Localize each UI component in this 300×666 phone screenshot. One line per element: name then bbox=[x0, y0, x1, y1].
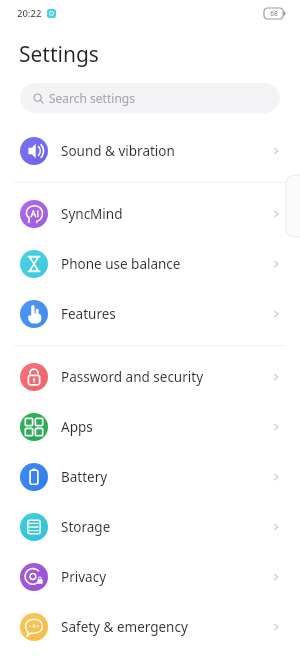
button[interactable]: Apps bbox=[0, 402, 300, 452]
button[interactable]: Features bbox=[0, 289, 300, 339]
button[interactable]: Safety & emergency bbox=[0, 602, 300, 652]
button[interactable]: Sound & vibration bbox=[0, 126, 300, 176]
staticText: Settings bbox=[19, 40, 99, 69]
button[interactable]: Storage bbox=[0, 502, 300, 552]
staticText: Password and security bbox=[61, 368, 270, 386]
staticText: SyncMind bbox=[61, 205, 270, 223]
staticText: Storage bbox=[61, 518, 270, 536]
button[interactable]: SyncMind bbox=[0, 189, 300, 239]
staticText: 68 bbox=[270, 9, 278, 18]
button[interactable]: Battery bbox=[0, 452, 300, 502]
staticText: Sound & vibration bbox=[61, 142, 270, 160]
staticText: Features bbox=[61, 305, 270, 323]
button[interactable]: Search settings bbox=[20, 83, 280, 113]
button[interactable]: Password and security bbox=[0, 352, 300, 402]
button[interactable]: Privacy bbox=[0, 552, 300, 602]
staticText: Battery bbox=[61, 468, 270, 486]
staticText: Phone use balance bbox=[61, 255, 270, 273]
staticText: 20:22 bbox=[17, 7, 42, 20]
staticText: Apps bbox=[61, 418, 270, 436]
staticText: Search settings bbox=[49, 90, 135, 106]
staticText: Privacy bbox=[61, 568, 270, 586]
button[interactable]: Phone use balance bbox=[0, 239, 300, 289]
staticText: Safety & emergency bbox=[61, 618, 270, 636]
